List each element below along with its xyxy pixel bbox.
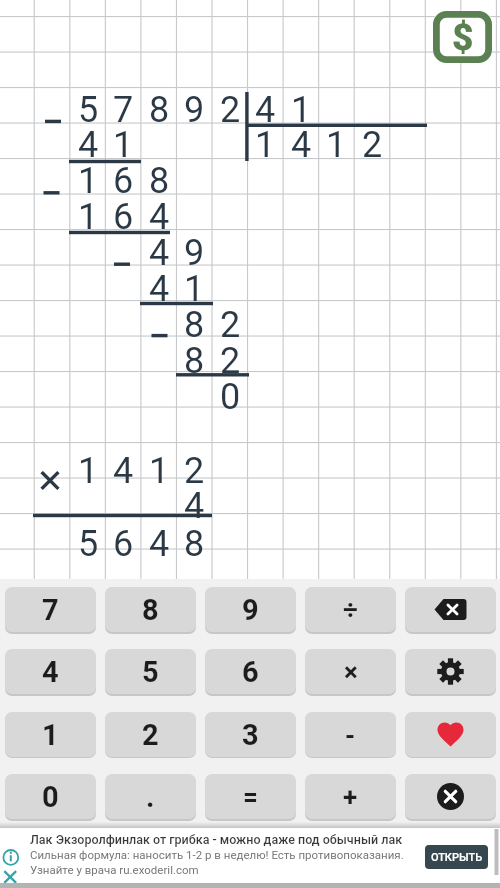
button[interactable]: 5 (105, 649, 196, 694)
staticText: 6 (242, 655, 259, 689)
staticText: 7 (42, 593, 59, 627)
staticText: 8 (149, 160, 170, 202)
staticText: 1 (78, 450, 99, 492)
button[interactable] (405, 712, 496, 757)
staticText: 2 (184, 450, 205, 492)
staticText: = (243, 782, 258, 812)
staticText: 1 (113, 124, 134, 166)
staticText: 5 (142, 655, 159, 689)
button[interactable]: 2 (105, 712, 196, 757)
button[interactable]: $ (433, 11, 492, 63)
staticText: 1 (78, 196, 99, 238)
staticText: 9 (242, 593, 259, 627)
staticText: 2 (220, 304, 241, 346)
staticText: 8 (184, 340, 205, 382)
staticText: 4 (184, 485, 205, 527)
staticText: 4 (149, 523, 170, 565)
button[interactable]: 3 (205, 712, 296, 757)
staticText: 4 (78, 124, 99, 166)
staticText: 7 (113, 89, 134, 131)
staticText: 4 (113, 450, 134, 492)
button[interactable]: 8 (105, 587, 196, 632)
staticText: 0 (42, 780, 59, 814)
staticText: 8 (142, 593, 159, 627)
staticText: 2 (142, 718, 159, 752)
staticText: 9 (184, 89, 205, 131)
staticText: 1 (255, 124, 276, 166)
staticText: 6 (113, 196, 134, 238)
staticText: 2 (362, 124, 383, 166)
staticText: 5 (78, 523, 99, 565)
staticText: 8 (184, 304, 205, 346)
staticText: - (345, 720, 356, 750)
button[interactable]: Лак Экзоролфинлак от грибка - можно даже… (0, 828, 500, 888)
button[interactable]: 1 (5, 712, 96, 757)
button[interactable]: 9 (205, 587, 296, 632)
button[interactable] (405, 587, 496, 632)
button[interactable]: ÷ (305, 587, 396, 632)
staticText: 1 (42, 718, 59, 752)
button[interactable]: 0 (5, 774, 96, 819)
staticText: 6 (113, 160, 134, 202)
staticText: 4 (291, 124, 312, 166)
button[interactable]: = (205, 774, 296, 819)
staticText: . (146, 780, 155, 814)
staticText: 9 (184, 232, 205, 274)
button[interactable]: 7 (5, 587, 96, 632)
staticText: ОТКРЫТЬ (431, 851, 483, 864)
button[interactable]: 6 (205, 649, 296, 694)
staticText: 3 (242, 718, 259, 752)
button[interactable] (405, 774, 496, 819)
button[interactable]: - (305, 712, 396, 757)
staticText: 1 (149, 450, 170, 492)
staticText: 5 (78, 89, 99, 131)
staticText: × (344, 657, 358, 687)
staticText: 4 (42, 655, 59, 689)
button[interactable]: + (305, 774, 396, 819)
staticText: Лак Экзоролфинлак от грибка - можно даже… (30, 832, 403, 847)
staticText: ÷ (343, 595, 358, 625)
staticText: 1 (326, 124, 347, 166)
staticText: 4 (149, 232, 170, 274)
button[interactable]: ОТКРЫТЬ (425, 845, 488, 869)
staticText: 4 (255, 89, 276, 131)
staticText: 1 (184, 268, 205, 310)
staticText: 8 (149, 89, 170, 131)
staticText: 4 (149, 268, 170, 310)
button[interactable]: 4 (5, 649, 96, 694)
staticText: 1 (291, 89, 312, 131)
staticText: 8 (184, 523, 205, 565)
button[interactable]: . (105, 774, 196, 819)
button[interactable]: × (305, 649, 396, 694)
staticText: 2 (220, 340, 241, 382)
staticText: 6 (113, 523, 134, 565)
staticText: 1 (78, 160, 99, 202)
staticText: Узнайте у врача ru.exoderil.com (30, 863, 199, 876)
staticText: Сильная формула: наносить 1-2 р в неделю… (30, 848, 404, 861)
staticText: 0 (220, 376, 241, 418)
staticText: 2 (220, 89, 241, 131)
button[interactable] (405, 649, 496, 694)
staticText: + (343, 782, 358, 812)
staticText: $ (452, 16, 474, 59)
staticText: 4 (149, 196, 170, 238)
